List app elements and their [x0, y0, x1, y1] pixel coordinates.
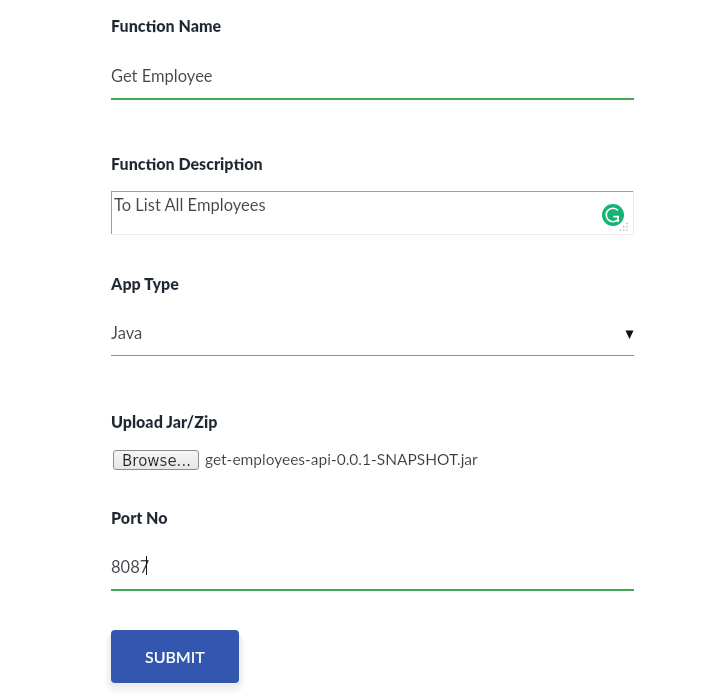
staticText: Upload Jar/Zip	[111, 412, 218, 431]
staticText: To List All Employees	[114, 195, 266, 215]
staticText: Function Name	[111, 16, 222, 35]
button[interactable]: Java	[111, 321, 634, 356]
button[interactable]: 8087	[111, 554, 634, 591]
staticText: get-employees-api-0.0.1-SNAPSHOT.jar	[205, 450, 478, 469]
staticText: App Type	[111, 274, 179, 293]
button[interactable]: Grammarly	[602, 204, 624, 226]
button[interactable]: To List All Employees	[111, 191, 634, 235]
staticText: 8087	[111, 557, 150, 577]
button[interactable]: Browse...	[113, 450, 199, 470]
staticText: SUBMIT	[145, 647, 205, 666]
button[interactable]: Get Employee	[111, 64, 634, 101]
staticText: Port No	[111, 508, 168, 527]
staticText: Java	[111, 323, 143, 343]
staticText: Function Description	[111, 154, 263, 173]
staticText: Get Employee	[111, 66, 213, 86]
button[interactable]: SUBMIT	[111, 630, 239, 683]
staticText: Browse...	[122, 452, 191, 469]
